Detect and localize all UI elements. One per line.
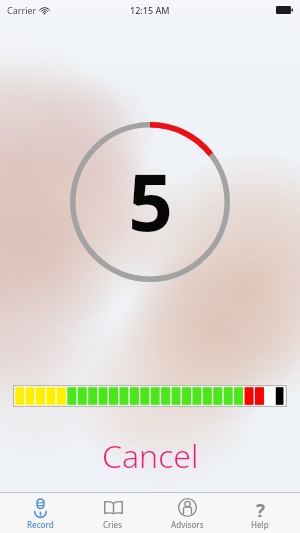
button[interactable]: Cancel <box>0 432 300 480</box>
staticText: Help <box>251 519 269 530</box>
staticText: Cries <box>103 519 123 530</box>
staticText: Advisors <box>171 519 204 530</box>
other: Cries <box>104 498 123 517</box>
staticText: Cancel <box>102 434 199 478</box>
button[interactable]: Help <box>226 493 294 533</box>
staticText: Record <box>27 519 54 530</box>
button[interactable]: Cries <box>79 493 147 533</box>
staticText: ? <box>256 498 266 517</box>
staticText: 12:15 AM <box>130 4 170 16</box>
button[interactable]: Record <box>6 493 74 533</box>
other: Help <box>251 498 270 517</box>
staticText: 5 <box>128 148 173 254</box>
other: Advisors <box>178 498 197 517</box>
button[interactable]: Advisors <box>153 493 221 533</box>
other: Record <box>31 498 50 517</box>
staticText: Carrier <box>7 4 37 16</box>
